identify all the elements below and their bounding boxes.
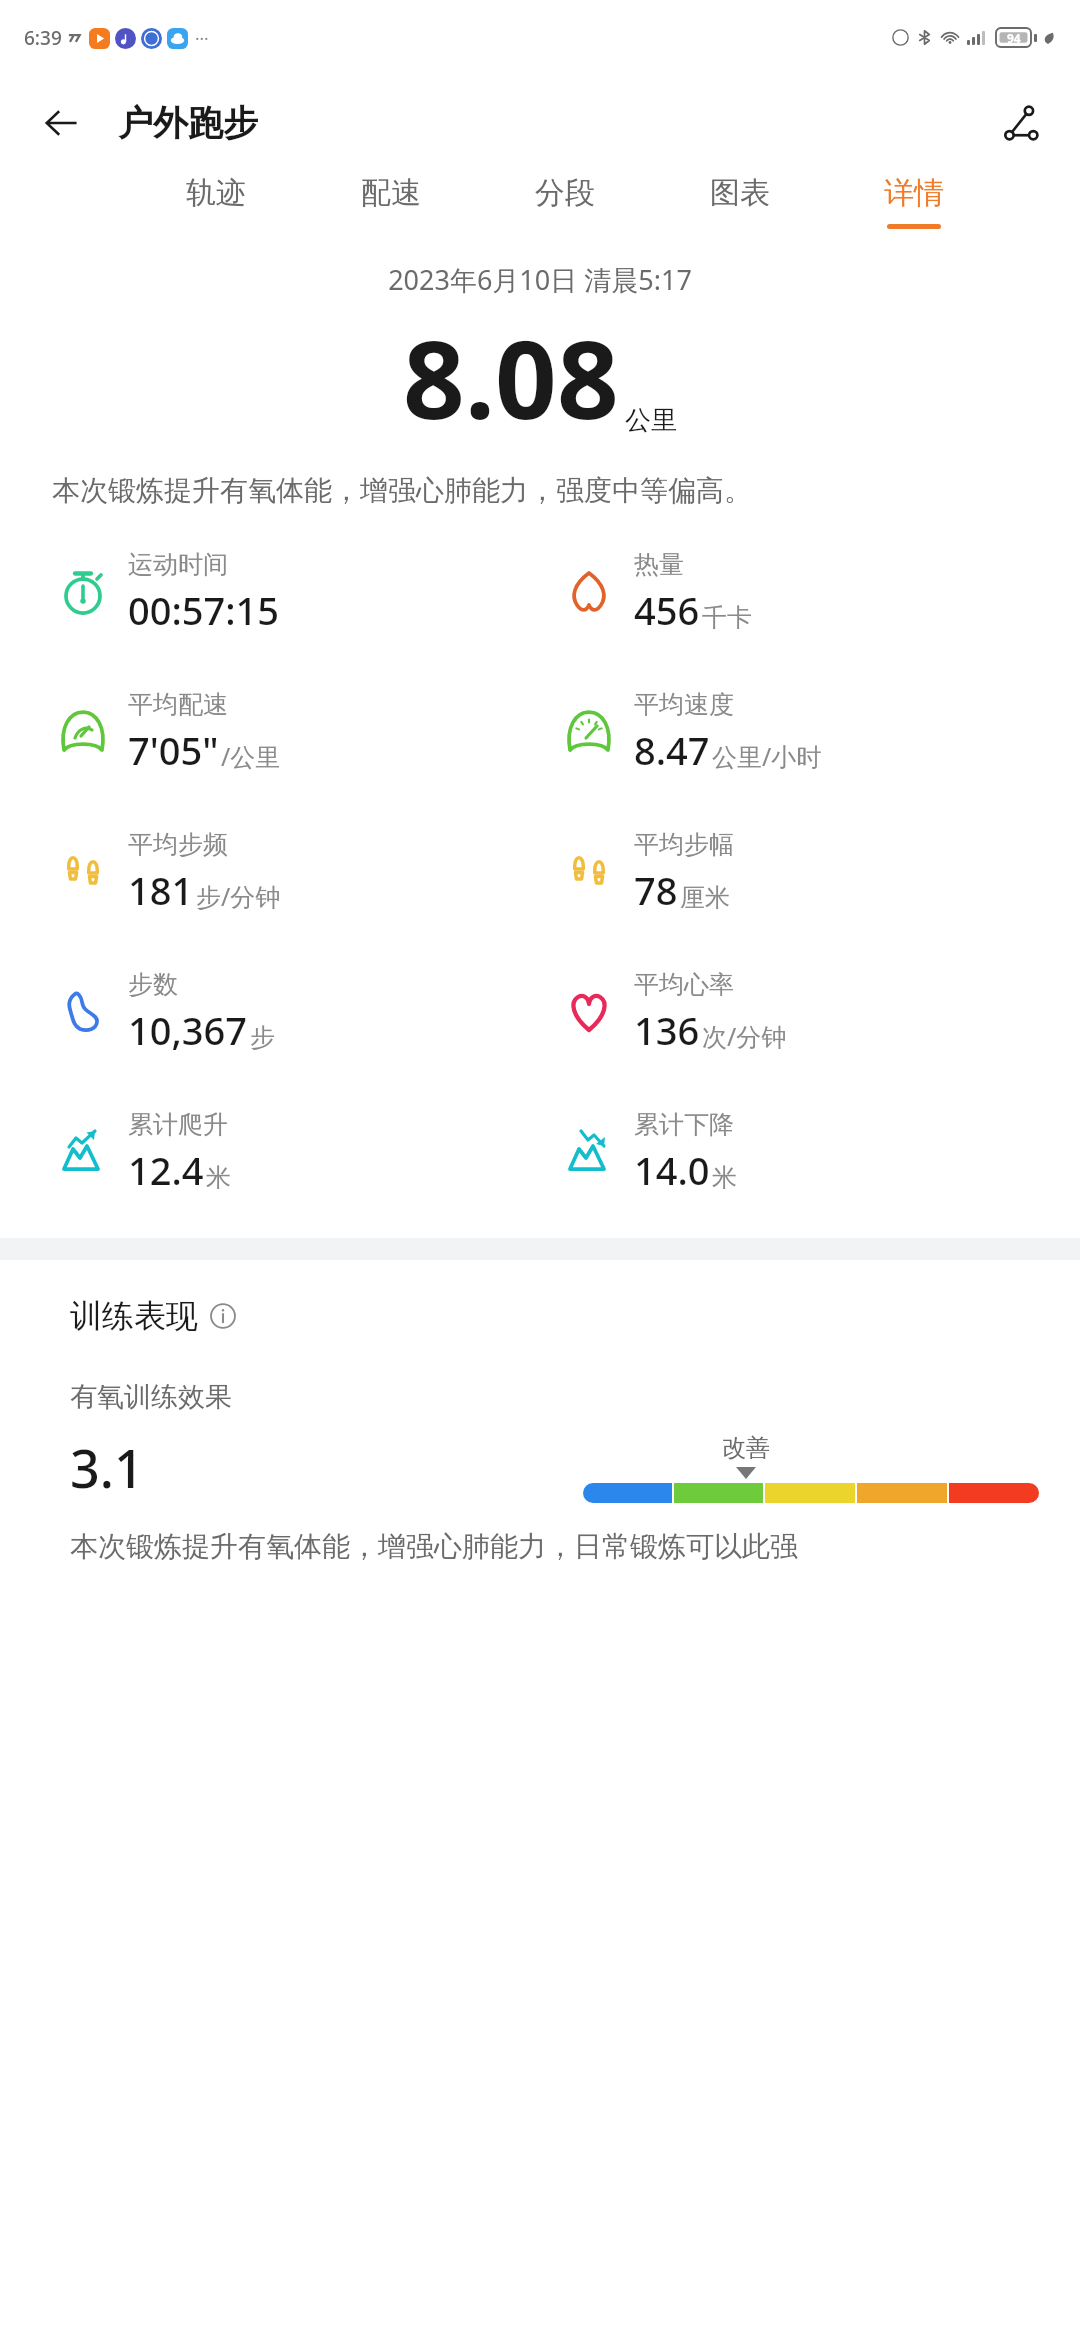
staticText: 136 bbox=[634, 1004, 700, 1056]
staticText: 运动时间 bbox=[128, 549, 228, 580]
button[interactable]: 平均心率 bbox=[540, 942, 1080, 1082]
staticText: 训练表现 bbox=[70, 1296, 198, 1336]
staticText: 78 bbox=[634, 864, 678, 916]
staticText: 米 bbox=[712, 1162, 737, 1193]
staticText: 热量 bbox=[634, 549, 684, 580]
button[interactable]: 平均步频 bbox=[0, 802, 540, 942]
staticText: 分段 bbox=[535, 174, 595, 212]
staticText: 有氧训练效果 bbox=[70, 1380, 232, 1414]
button[interactable]: 平均步幅 bbox=[540, 802, 1080, 942]
staticText: 平均心率 bbox=[634, 969, 734, 1000]
staticText: 步数 bbox=[128, 969, 178, 1000]
staticText: 2023年6月10日 清晨5:17 bbox=[0, 261, 1080, 298]
staticText: 轨迹 bbox=[186, 174, 246, 212]
button[interactable]: 平均速度 bbox=[540, 662, 1080, 802]
button[interactable]: 平均配速 bbox=[0, 662, 540, 802]
staticText: 累计爬升 bbox=[128, 1109, 228, 1140]
staticText: 户外跑步 bbox=[118, 101, 258, 145]
button[interactable]: 累计爬升 bbox=[0, 1082, 540, 1222]
staticText: 步 bbox=[250, 1022, 275, 1053]
staticText: 181 bbox=[128, 864, 194, 916]
staticText: 10,367 bbox=[128, 1004, 248, 1056]
staticText: 本次锻炼提升有氧体能，增强心肺能力，日常锻炼可以此强 bbox=[70, 1529, 798, 1564]
button[interactable]: 训练表现 bbox=[70, 1296, 236, 1336]
staticText: 平均步频 bbox=[128, 829, 228, 860]
staticText: 累计下降 bbox=[634, 1109, 734, 1140]
staticText: 平均步幅 bbox=[634, 829, 734, 860]
staticText: 公里/小时 bbox=[712, 739, 822, 773]
staticText: 公里 bbox=[625, 404, 677, 437]
staticText: 厘米 bbox=[680, 882, 730, 913]
button[interactable]: 运动时间 bbox=[0, 522, 540, 662]
button[interactable]: 详情 bbox=[878, 170, 950, 233]
button[interactable]: 步数 bbox=[0, 942, 540, 1082]
staticText: 12.4 bbox=[128, 1144, 204, 1196]
staticText: /公里 bbox=[221, 739, 281, 773]
staticText: 图表 bbox=[710, 174, 770, 212]
staticText: 6:39 bbox=[24, 25, 62, 51]
button[interactable]: 图表 bbox=[704, 170, 776, 233]
staticText: 千卡 bbox=[702, 602, 752, 633]
staticText: 00:57:15 bbox=[128, 584, 280, 636]
staticText: 456 bbox=[634, 584, 700, 636]
staticText: 3.1 bbox=[70, 1432, 144, 1503]
staticText: 7'05" bbox=[128, 724, 219, 776]
button[interactable]: Share bbox=[988, 90, 1054, 156]
staticText: 平均配速 bbox=[128, 689, 228, 720]
staticText: 8.08 bbox=[403, 304, 619, 451]
button[interactable]: 配速 bbox=[355, 170, 427, 233]
staticText: 8.47 bbox=[634, 724, 710, 776]
staticText: 次/分钟 bbox=[702, 1019, 787, 1053]
button[interactable]: 轨迹 bbox=[180, 170, 252, 233]
staticText: 94 bbox=[1007, 30, 1021, 46]
button[interactable]: 累计下降 bbox=[540, 1082, 1080, 1222]
staticText: 14.0 bbox=[634, 1144, 710, 1196]
button[interactable]: 热量 bbox=[540, 522, 1080, 662]
staticText: 详情 bbox=[884, 174, 944, 212]
staticText: 改善 bbox=[722, 1433, 770, 1463]
button[interactable]: 分段 bbox=[529, 170, 601, 233]
staticText: 平均速度 bbox=[634, 689, 734, 720]
button[interactable]: Back bbox=[30, 92, 92, 154]
staticText: 米 bbox=[206, 1162, 231, 1193]
staticText: 步/分钟 bbox=[196, 879, 281, 913]
staticText: 配速 bbox=[361, 174, 421, 212]
staticText: 本次锻炼提升有氧体能，增强心肺能力，强度中等偏高。 bbox=[52, 473, 1028, 508]
staticText: ··· bbox=[195, 27, 209, 50]
